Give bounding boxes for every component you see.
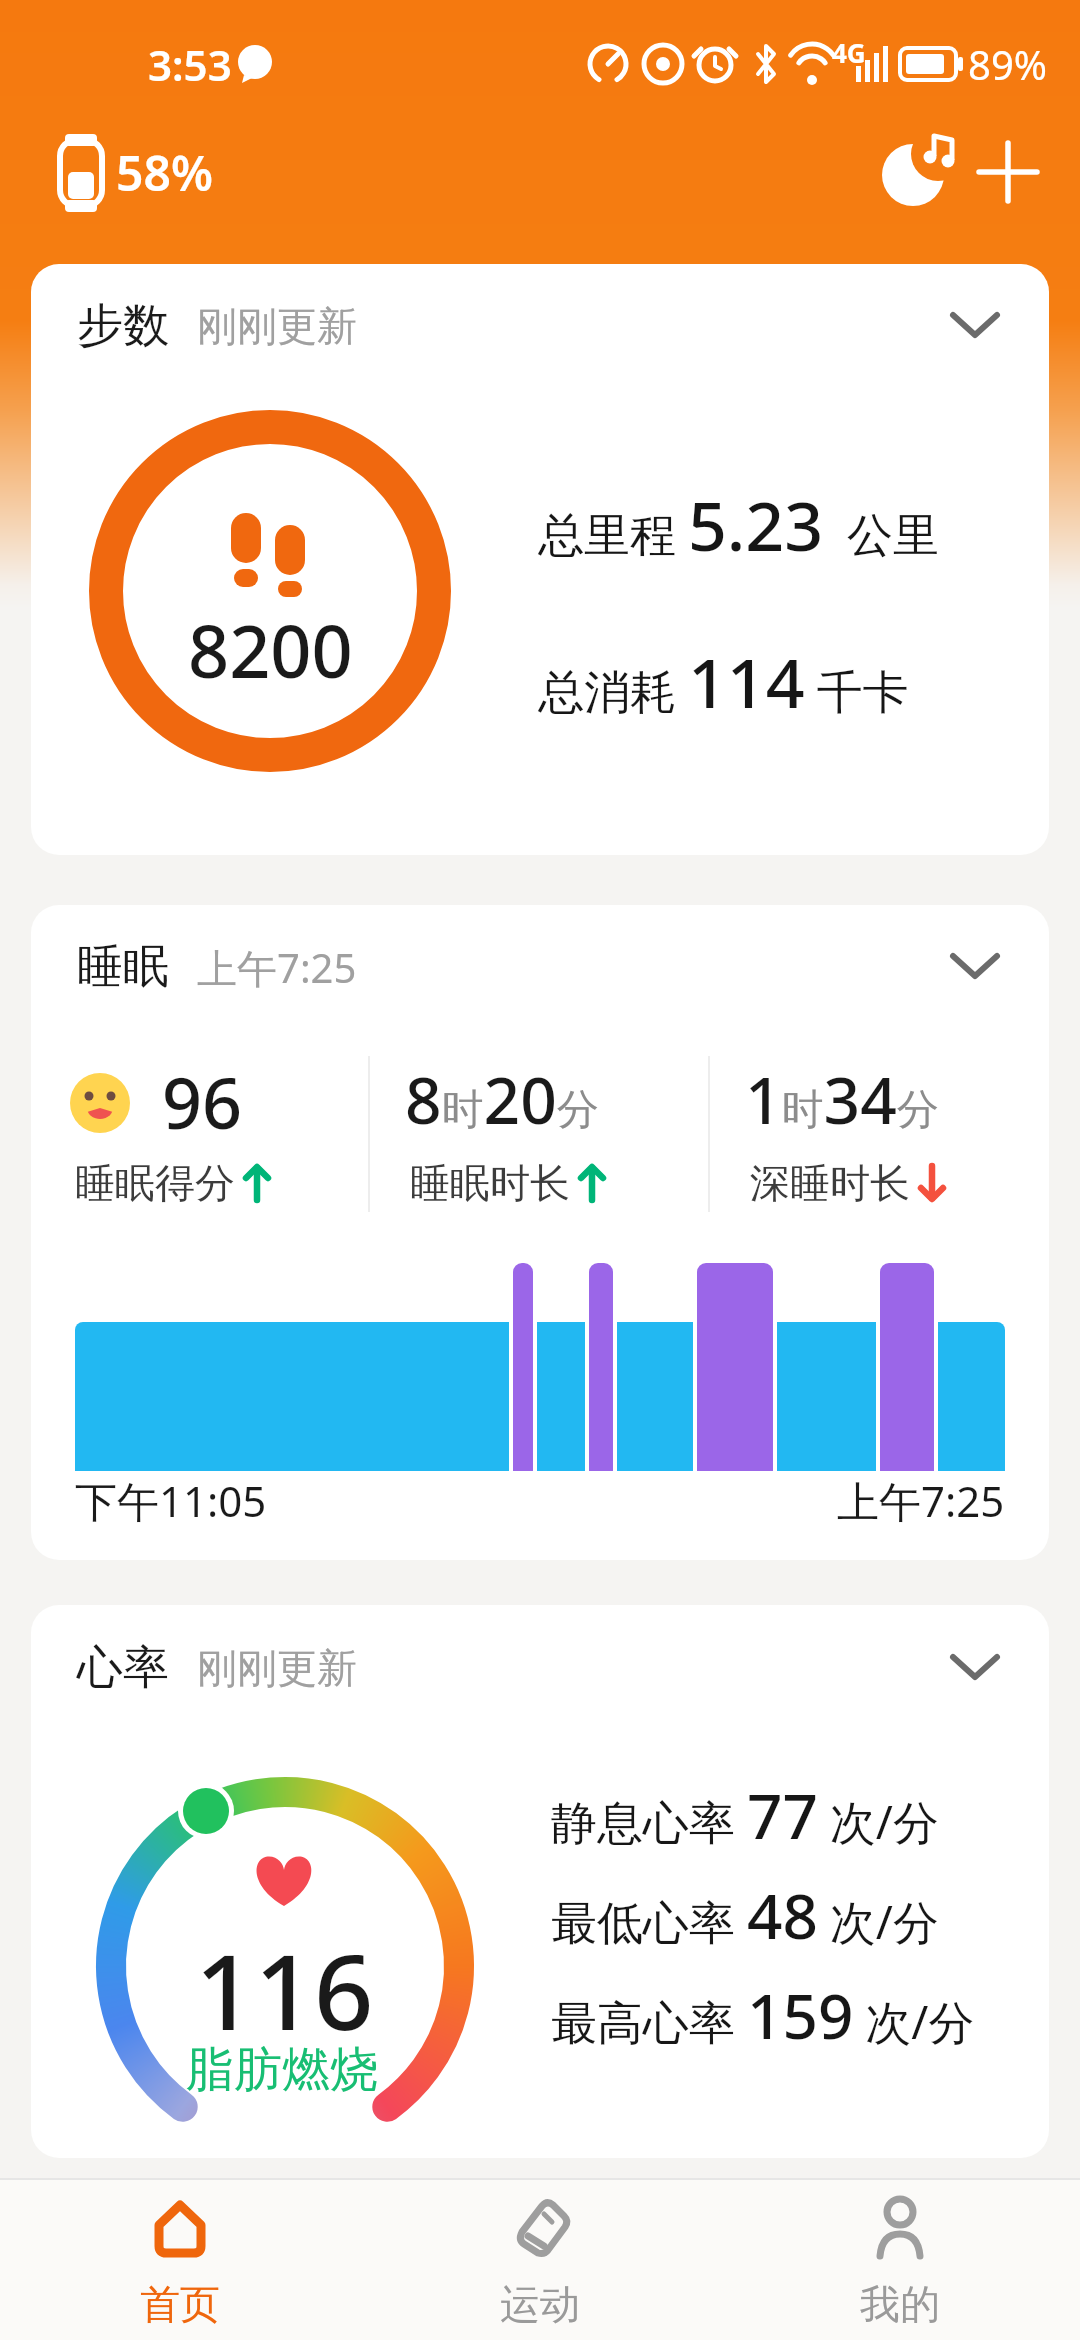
- staticText: 脂肪燃烧: [186, 2040, 378, 2100]
- staticText: 最高心率 159 次/分: [551, 1973, 975, 2057]
- staticText: 首页: [140, 2279, 220, 2329]
- button[interactable]: [31, 905, 1049, 1560]
- button[interactable]: 我的: [820, 2186, 980, 2336]
- staticText: 96: [162, 1054, 243, 1149]
- staticText: 89%: [968, 37, 1047, 91]
- staticText: 上午7:25: [837, 1472, 1005, 1529]
- staticText: 心率: [77, 1639, 169, 1697]
- staticText: 总里程 5.23 公里: [538, 478, 940, 571]
- button[interactable]: [31, 1605, 1049, 2158]
- staticText: 下午11:05: [75, 1472, 267, 1529]
- staticText: 步数: [77, 297, 169, 355]
- button[interactable]: [876, 128, 964, 216]
- staticText: 4G: [832, 35, 866, 70]
- staticText: 上午7:25: [197, 940, 357, 995]
- staticText: 深睡时长: [750, 1158, 910, 1208]
- staticText: 1时34分: [745, 1056, 939, 1143]
- staticText: 3:53: [148, 36, 232, 93]
- staticText: 睡眠得分: [75, 1158, 235, 1208]
- button[interactable]: [31, 264, 1049, 855]
- staticText: 116: [195, 1919, 374, 2039]
- staticText: 8200: [188, 601, 353, 699]
- button[interactable]: [976, 140, 1040, 204]
- staticText: 运动: [500, 2279, 580, 2329]
- staticText: 总消耗 114 千卡: [538, 635, 909, 728]
- staticText: 58%: [116, 140, 213, 205]
- button[interactable]: 首页: [100, 2186, 260, 2336]
- staticText: 刚刚更新: [197, 301, 357, 351]
- staticText: 睡眠时长: [410, 1158, 570, 1208]
- button[interactable]: 运动: [460, 2186, 620, 2336]
- staticText: 静息心率 77 次/分: [551, 1773, 939, 1857]
- staticText: 睡眠: [77, 938, 169, 996]
- staticText: 最低心率 48 次/分: [551, 1873, 939, 1957]
- staticText: 刚刚更新: [197, 1643, 357, 1693]
- staticText: 我的: [860, 2279, 940, 2329]
- staticText: 8时20分: [405, 1056, 599, 1143]
